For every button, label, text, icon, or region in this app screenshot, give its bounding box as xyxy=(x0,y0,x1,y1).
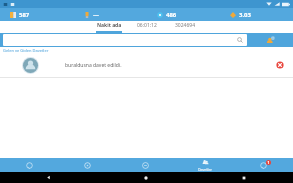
button[interactable]: Gelen ve Giden Davetler xyxy=(0,47,293,53)
staticText: 587 xyxy=(19,11,30,19)
button[interactable]: Stat icon xyxy=(74,8,147,21)
button[interactable]: Recents xyxy=(195,172,293,183)
button[interactable]: Groups xyxy=(58,158,116,172)
button[interactable]: More xyxy=(234,158,293,172)
other: Search xyxy=(237,37,243,43)
button[interactable]: Search xyxy=(3,34,247,46)
staticText: 3.03 xyxy=(239,11,251,19)
button[interactable]: Back xyxy=(0,172,97,183)
button[interactable]: Cancel invite xyxy=(273,58,287,72)
staticText: 3024694 xyxy=(175,22,196,29)
button[interactable]: Add contact xyxy=(247,34,293,46)
other: Stat icon xyxy=(10,12,16,18)
button[interactable]: Nakit ada xyxy=(90,21,128,33)
button[interactable]: Stat icon xyxy=(220,8,293,21)
button[interactable]: Invites xyxy=(175,158,234,172)
button[interactable]: 3024694 xyxy=(166,21,204,33)
button[interactable]: Stat icon xyxy=(147,8,220,21)
staticText: — xyxy=(93,11,100,19)
other: Stat icon xyxy=(230,12,236,18)
button[interactable]: 06:01:12 xyxy=(128,21,166,33)
button[interactable]: Home xyxy=(97,172,195,183)
staticText: Davetler xyxy=(198,167,212,172)
staticText: Gelen ve Giden Davetler xyxy=(3,48,49,53)
button[interactable]: Messages xyxy=(0,158,58,172)
button[interactable]: Discover xyxy=(116,158,175,172)
other: Stat icon xyxy=(84,12,90,18)
button[interactable]: buraldusna davet edildi. xyxy=(0,53,293,77)
other: Stat icon xyxy=(157,12,163,18)
staticText: 1 xyxy=(267,160,270,165)
staticText: 06:01:12 xyxy=(137,22,157,29)
staticText: Nakit ada xyxy=(97,22,122,29)
button[interactable]: Stat icon xyxy=(0,8,74,21)
staticText: buraldusna davet edildi. xyxy=(65,62,273,69)
staticText: 486 xyxy=(166,11,177,19)
